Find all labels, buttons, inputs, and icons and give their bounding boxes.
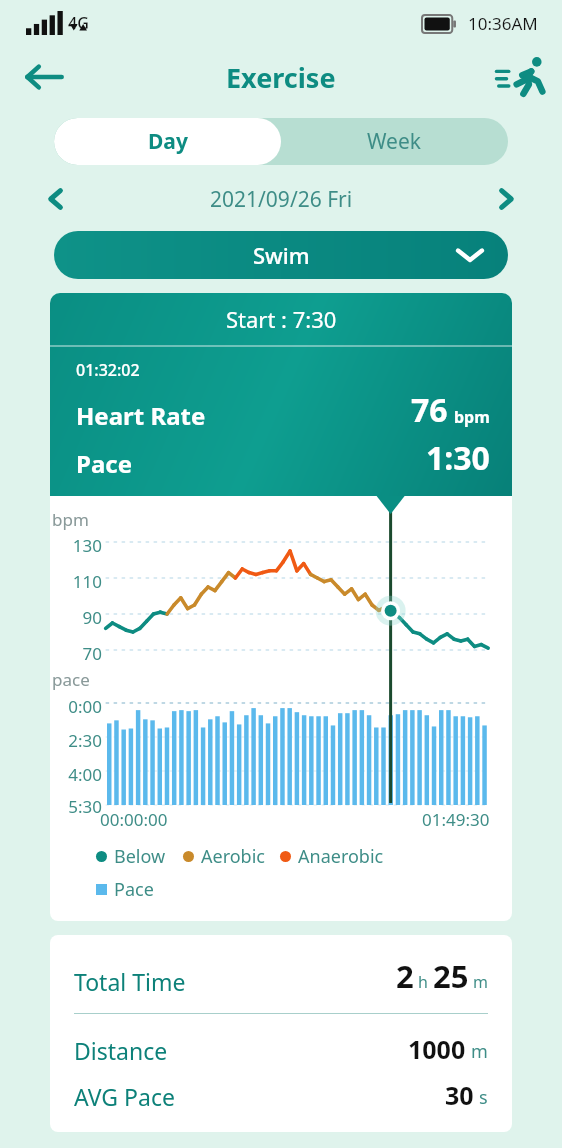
staticText: 2:30 xyxy=(52,729,102,752)
staticText: 30 xyxy=(445,1078,474,1112)
staticText: 1000 xyxy=(408,1032,466,1066)
staticText: h xyxy=(418,971,428,993)
staticText: m xyxy=(471,1039,488,1064)
button[interactable]: Next day xyxy=(486,179,526,219)
staticText: 01:32:02 xyxy=(76,359,140,381)
staticText: m xyxy=(473,971,488,993)
staticText: Exercise xyxy=(226,59,336,96)
staticText: 10:36AM xyxy=(468,12,538,35)
staticText: Pace xyxy=(114,877,154,902)
staticText: Week xyxy=(367,127,422,156)
button[interactable]: Swim xyxy=(54,231,508,279)
staticText: 70 xyxy=(52,642,102,665)
staticText: Pace xyxy=(76,447,132,480)
staticText: 4G xyxy=(68,12,89,34)
staticText: 01:49:30 xyxy=(422,808,490,831)
staticText: 2021/09/26 Fri xyxy=(210,185,353,214)
staticText: 4:00 xyxy=(52,763,102,786)
staticText: bpm xyxy=(454,406,490,428)
button[interactable]: Exercise types xyxy=(492,49,548,105)
button[interactable]: Day xyxy=(54,118,281,165)
staticText: Total Time xyxy=(74,966,186,997)
staticText: 0:00 xyxy=(52,695,102,718)
button[interactable]: Previous day xyxy=(36,179,76,219)
staticText: 76 xyxy=(411,388,448,432)
staticText: 25 xyxy=(433,955,469,997)
staticText: Swim xyxy=(253,240,310,270)
button[interactable]: Back xyxy=(18,51,70,103)
staticText: 1:30 xyxy=(426,436,490,480)
staticText: pace xyxy=(52,668,102,691)
staticText: bpm xyxy=(52,508,102,531)
staticText: s xyxy=(479,1085,488,1110)
staticText: Below xyxy=(114,844,166,869)
staticText: 2 xyxy=(396,955,414,997)
staticText: Day xyxy=(148,127,188,156)
button[interactable]: Week xyxy=(281,118,508,165)
staticText: 130 xyxy=(52,534,102,557)
staticText: Distance xyxy=(74,1035,168,1066)
staticText: 5:30 xyxy=(52,795,102,818)
staticText: AVG Pace xyxy=(74,1081,175,1112)
staticText: Heart Rate xyxy=(76,399,206,432)
staticText: Aerobic xyxy=(201,844,265,869)
staticText: Start : 7:30 xyxy=(226,304,337,334)
staticText: Anaerobic xyxy=(298,844,384,869)
staticText: 00:00:00 xyxy=(100,808,168,831)
staticText: 110 xyxy=(52,570,102,593)
staticText: 90 xyxy=(52,606,102,629)
